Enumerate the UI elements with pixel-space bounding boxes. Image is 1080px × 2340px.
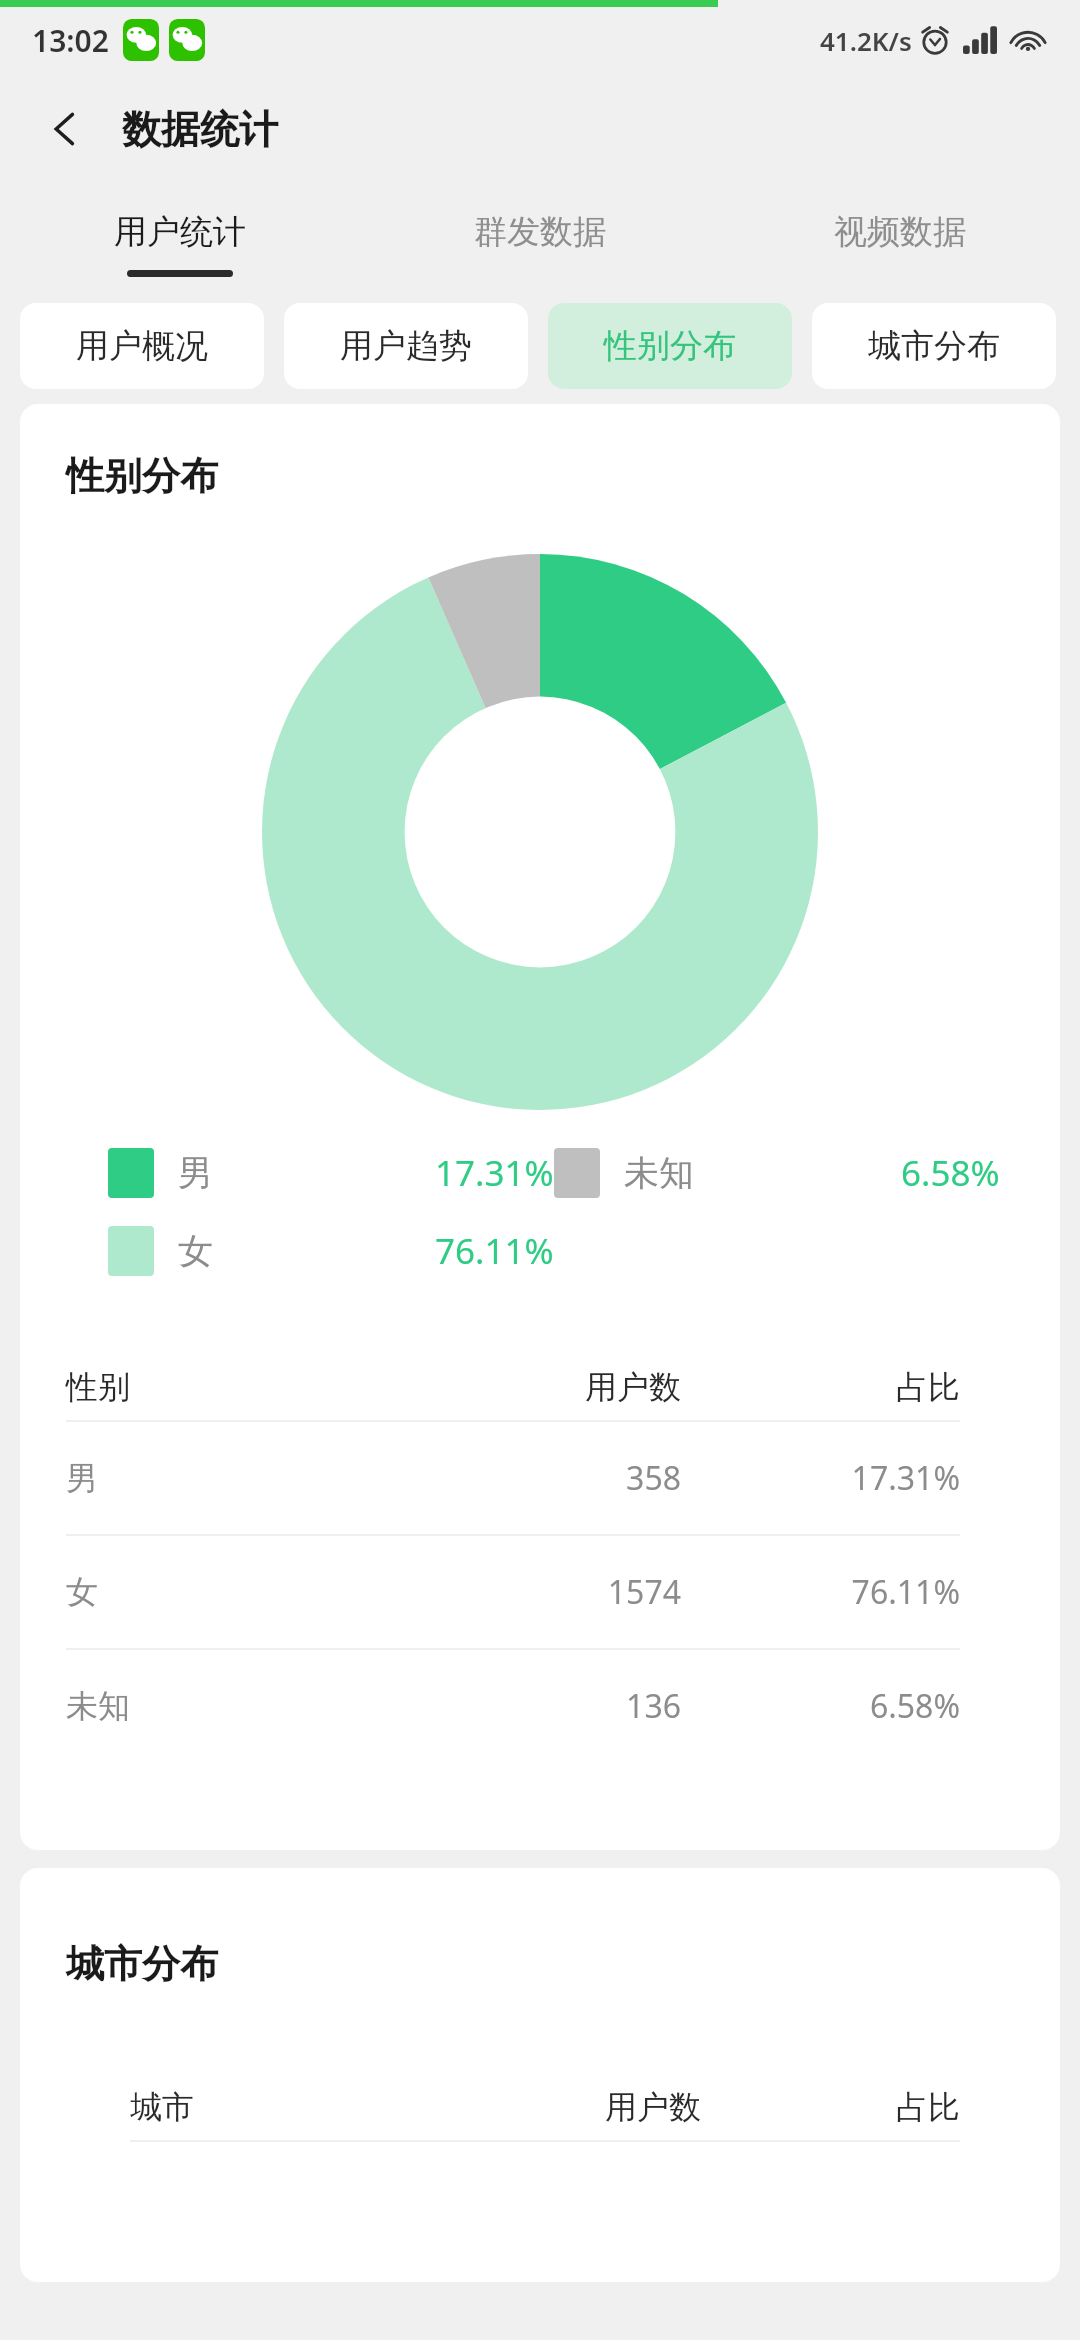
staticText: 性别分布 [604,325,736,367]
button[interactable]: 性别分布 [548,303,792,389]
staticText: 视频数据 [834,211,966,253]
staticText: 用户统计 [114,211,246,253]
button[interactable]: 女 [66,1536,960,1648]
staticText: 358 [388,1456,681,1500]
staticText: 未知 [624,1151,694,1195]
button[interactable]: 视频数据 [720,185,1080,303]
button[interactable]: 女 [108,1226,554,1276]
button[interactable]: 未知 [554,1148,1000,1198]
staticText: 城市分布 [66,1940,218,1988]
button[interactable]: 用户趋势 [284,303,528,389]
button[interactable]: 男 [108,1148,554,1198]
staticText: 性别分布 [66,452,218,500]
staticText: 男 [178,1151,213,1195]
staticText: 76.11% [435,1227,554,1275]
staticText: 女 [66,1572,388,1612]
staticText: 1574 [388,1570,681,1614]
button[interactable]: 城市分布 [812,303,1056,389]
staticText: 用户数 [388,1367,681,1407]
staticText: 女 [178,1229,213,1273]
staticText: 17.31% [435,1149,554,1197]
staticText: 6.58% [901,1149,1000,1197]
staticText: 用户概况 [76,325,208,367]
staticText: 13:02 [32,20,109,61]
button[interactable]: 用户统计 [0,185,360,303]
button[interactable]: 未知 [66,1650,960,1762]
button[interactable]: 男 [66,1422,960,1534]
staticText: 占比 [681,1367,960,1407]
button[interactable]: Back [26,90,104,168]
staticText: 未知 [66,1686,388,1726]
staticText: 城市分布 [868,325,1000,367]
staticText: 用户数 [429,2087,701,2127]
staticText: 数据统计 [122,105,278,154]
staticText: 男 [66,1458,388,1498]
staticText: 群发数据 [474,211,606,253]
button[interactable]: 用户概况 [20,303,264,389]
staticText: 性别 [66,1367,388,1407]
staticText: 41.2K/s [820,23,912,58]
staticText: 占比 [701,2087,960,2127]
staticText: 76.11% [681,1570,960,1614]
staticText: 136 [388,1684,681,1728]
staticText: 17.31% [681,1456,960,1500]
staticText: 6.58% [681,1684,960,1728]
staticText: 城市 [130,2087,429,2127]
staticText: 用户趋势 [340,325,472,367]
button[interactable]: 群发数据 [360,185,720,303]
